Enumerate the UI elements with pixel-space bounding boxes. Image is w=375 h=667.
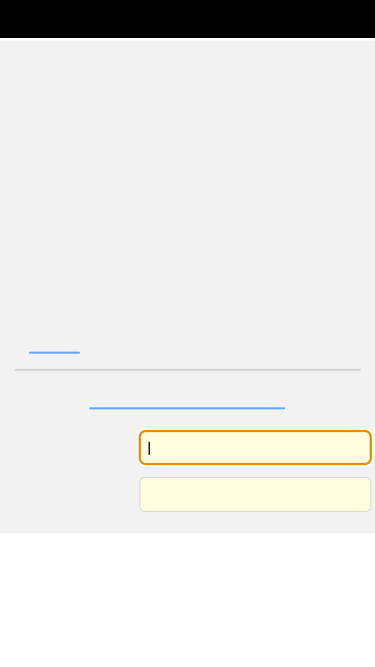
button[interactable]: Link — [29, 352, 80, 354]
button[interactable]: Link — [89, 407, 285, 409]
button[interactable]: Text field — [140, 477, 371, 511]
button[interactable]: Text field, editing — [137, 428, 374, 467]
